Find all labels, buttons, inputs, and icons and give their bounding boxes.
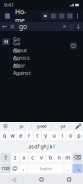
staticText: good: [37, 123, 47, 129]
button[interactable]: Voice input: [73, 122, 83, 130]
staticText: Home: [15, 7, 26, 25]
staticText: e: [19, 132, 22, 139]
button[interactable]: More options: [74, 10, 81, 21]
staticText: ◁: [12, 176, 16, 183]
button[interactable]: Space: [27, 164, 63, 173]
staticText: t: [36, 132, 38, 139]
staticText: o: [69, 132, 72, 139]
button[interactable]: k: [50, 142, 52, 151]
staticText: ?123: [1, 166, 9, 171]
staticText: r: [28, 132, 30, 139]
button[interactable]: g: [40, 142, 43, 151]
button[interactable]: Go Across: [13, 50, 40, 58]
button[interactable]: Page info: [10, 24, 15, 29]
button[interactable]: Security: [41, 12, 49, 19]
button[interactable]: x: [20, 153, 28, 162]
button[interactable]: Shift: [0, 153, 10, 162]
staticText: s: [31, 143, 33, 150]
button[interactable]: go: [17, 22, 60, 30]
staticText: q: [3, 132, 6, 139]
staticText: Go Across: [13, 47, 30, 61]
button[interactable]: o: [67, 131, 74, 140]
button[interactable]: s: [31, 142, 33, 151]
button[interactable]: h: [43, 142, 46, 151]
button[interactable]: ?123: [0, 164, 10, 173]
button[interactable]: z: [11, 153, 19, 162]
button[interactable]: w: [9, 131, 16, 140]
staticText: ⌫: [73, 154, 81, 161]
button[interactable]: Go: [13, 35, 40, 43]
button[interactable]: Home: [13, 10, 28, 21]
staticText: Go: [13, 35, 20, 43]
button[interactable]: Period: [64, 164, 71, 173]
staticText: x: [23, 154, 26, 161]
button[interactable]: Recents: [55, 175, 83, 184]
button[interactable]: l: [53, 142, 55, 151]
staticText: m: [65, 154, 70, 161]
staticText: h: [43, 143, 46, 150]
button[interactable]: Back: [0, 175, 28, 184]
button[interactable]: j: [47, 142, 49, 151]
button[interactable]: Menu: [2, 10, 13, 21]
button[interactable]: u: [50, 131, 58, 140]
button[interactable]: v: [38, 153, 45, 162]
button[interactable]: History: [2, 38, 10, 45]
staticText: w: [10, 132, 14, 139]
staticText: H: [4, 38, 8, 45]
staticText: 🎤: [74, 123, 81, 129]
staticText: go: [19, 123, 23, 129]
button[interactable]: Fill suggestion: [70, 42, 77, 49]
staticText: y: [44, 132, 47, 139]
button[interactable]: Go Against: [13, 66, 40, 73]
button[interactable]: f: [37, 142, 39, 151]
staticText: ,: [22, 165, 23, 172]
staticText: p: [77, 132, 80, 139]
button[interactable]: Comma: [19, 164, 26, 173]
button[interactable]: a: [28, 142, 30, 151]
staticText: ×: [62, 22, 66, 31]
staticText: g: [40, 143, 43, 150]
button[interactable]: got: [53, 122, 73, 130]
button[interactable]: i: [59, 131, 66, 140]
button[interactable]: Back: [2, 22, 8, 30]
staticText: f: [37, 143, 39, 150]
button[interactable]: n: [55, 153, 63, 162]
button[interactable]: Tabs: [49, 12, 58, 19]
button[interactable]: go: [11, 122, 31, 130]
staticText: 🔍: [75, 166, 80, 171]
button[interactable]: c: [29, 153, 37, 162]
button[interactable]: q: [0, 131, 8, 140]
button[interactable]: Search: [72, 164, 82, 173]
button[interactable]: good: [32, 122, 52, 130]
button[interactable]: Go After: [13, 58, 40, 66]
staticText: ←: [2, 23, 8, 30]
button[interactable]: b: [46, 153, 54, 162]
button[interactable]: Downloads: [76, 22, 81, 30]
staticText: l: [53, 143, 54, 150]
button[interactable]: Shield: [58, 12, 66, 19]
staticText: z: [14, 154, 17, 161]
staticText: k: [50, 143, 52, 150]
button[interactable]: Go About: [13, 43, 40, 50]
staticText: b: [49, 154, 52, 161]
staticText: c: [31, 154, 34, 161]
button[interactable]: r: [25, 131, 33, 140]
staticText: j: [47, 143, 48, 150]
button[interactable]: Clear: [62, 22, 67, 30]
staticText: Go About: [13, 40, 27, 54]
button[interactable]: Apps: [66, 12, 74, 19]
button[interactable]: Clipboard: [0, 122, 11, 130]
button[interactable]: m: [64, 153, 71, 162]
button[interactable]: t: [34, 131, 41, 140]
staticText: d: [34, 143, 36, 150]
button[interactable]: Home: [28, 175, 55, 184]
staticText: go: [19, 22, 27, 31]
button[interactable]: p: [75, 131, 82, 140]
button[interactable]: d: [34, 142, 36, 151]
button[interactable]: Emoji: [11, 164, 18, 173]
button[interactable]: e: [17, 131, 24, 140]
staticText: ☺: [12, 165, 18, 172]
button[interactable]: y: [42, 131, 49, 140]
button[interactable]: Backspace: [72, 153, 82, 162]
